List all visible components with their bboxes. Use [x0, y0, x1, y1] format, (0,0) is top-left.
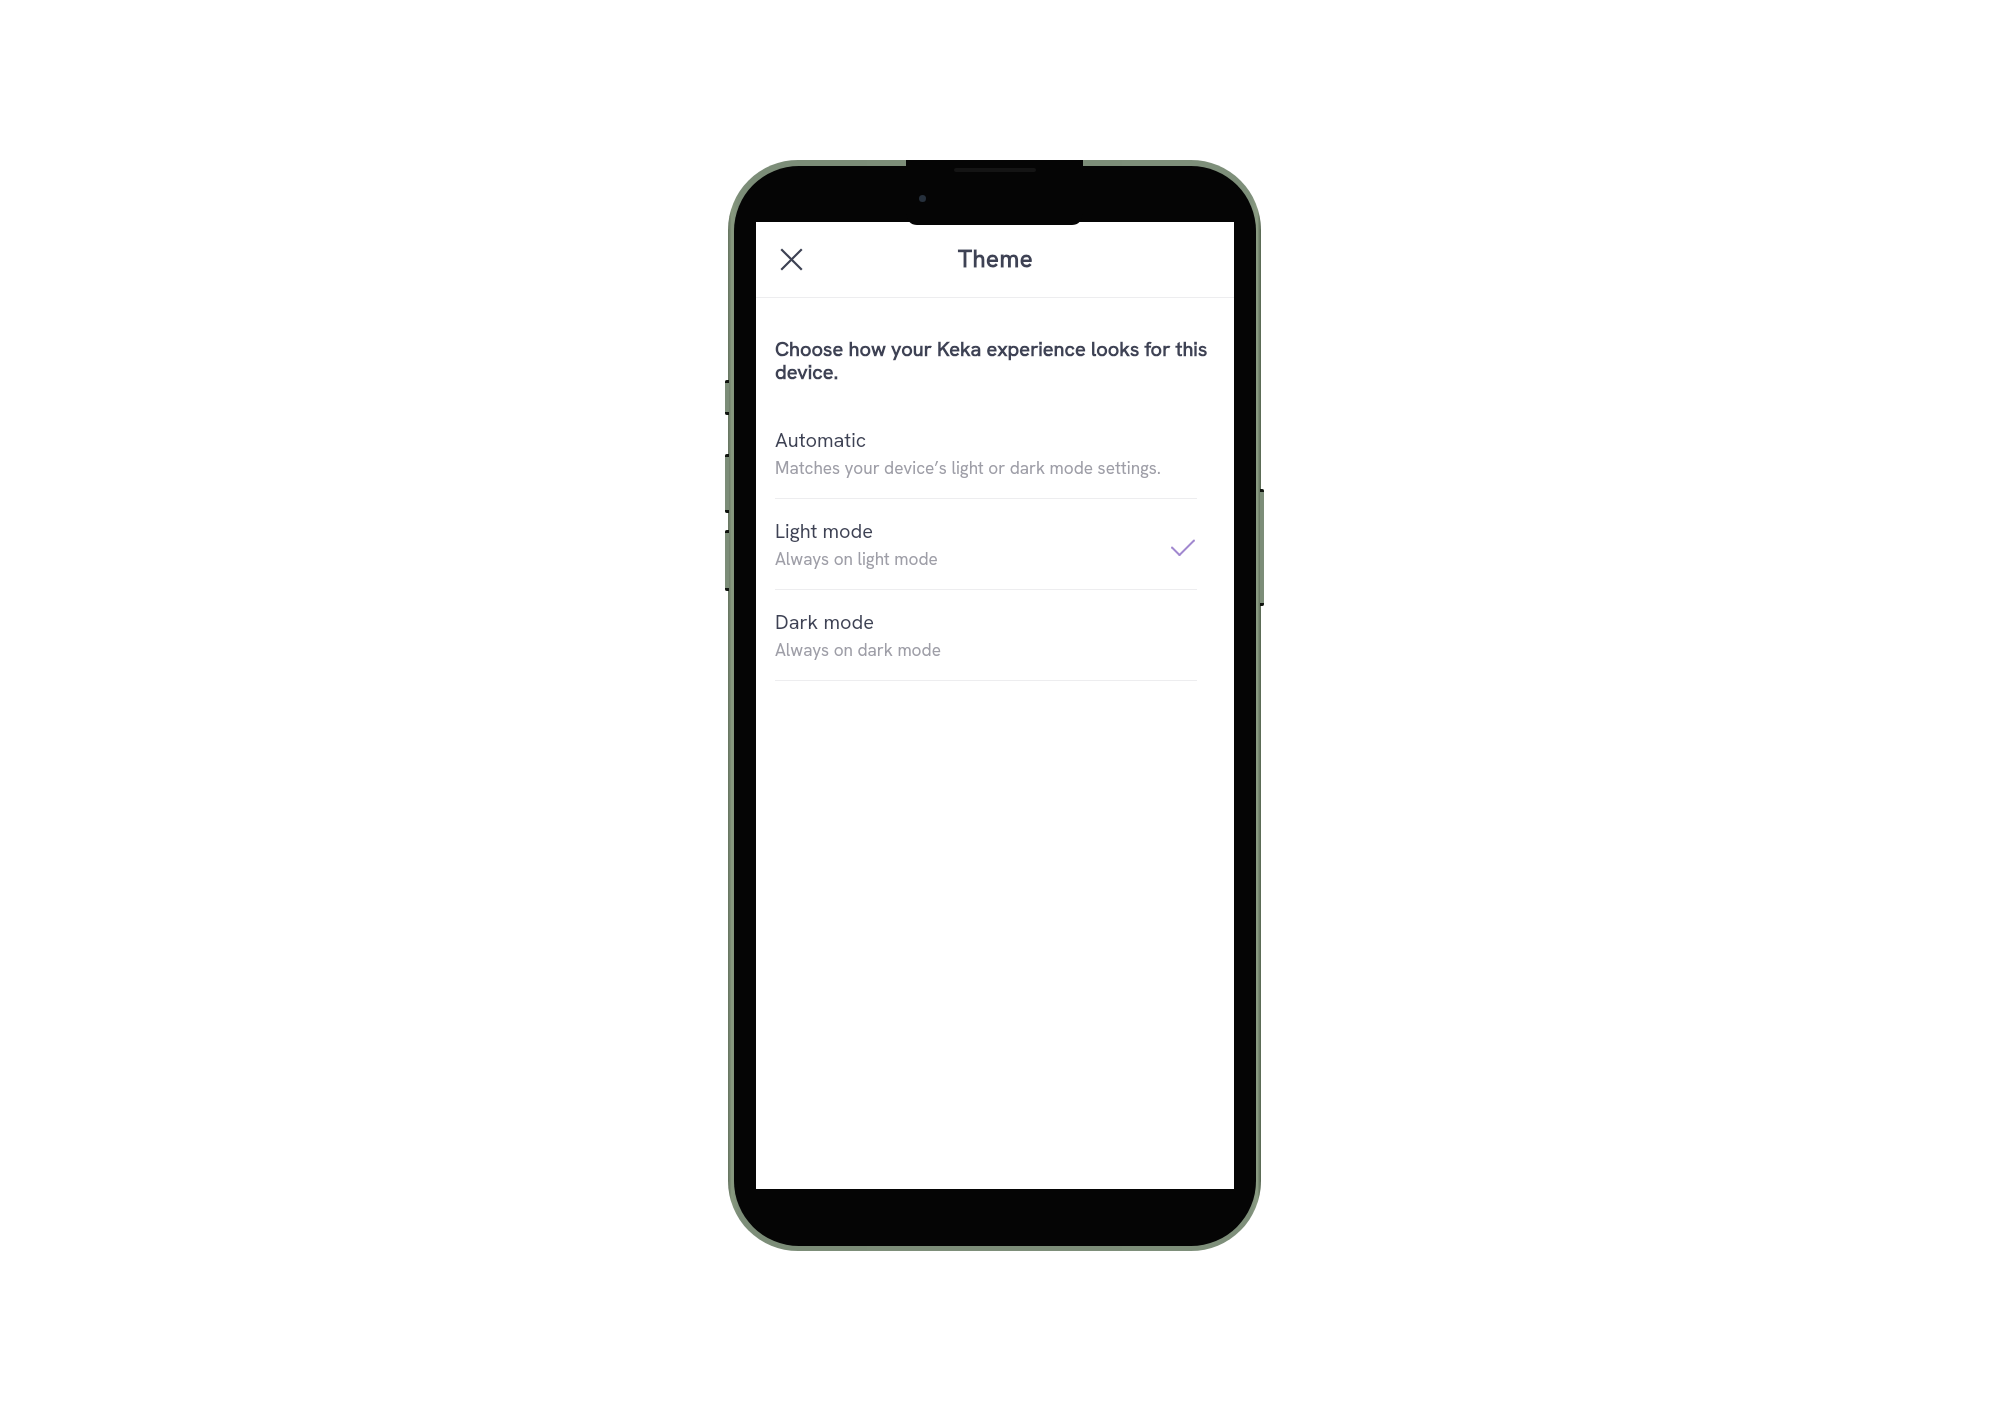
staticText: Always on dark mode: [775, 639, 941, 661]
staticText: Automatic: [775, 427, 867, 453]
staticText: Dark mode: [775, 609, 875, 635]
button[interactable]: Close: [769, 237, 813, 281]
staticText: Matches your device’s light or dark mode…: [775, 457, 1161, 479]
staticText: Light mode: [775, 518, 874, 544]
button[interactable]: Automatic: [756, 427, 1234, 518]
staticText: Choose how your Keka experience looks fo…: [775, 336, 1219, 385]
button[interactable]: Dark mode: [756, 609, 1234, 700]
button[interactable]: Selected: [1171, 540, 1205, 574]
button[interactable]: Light mode: [756, 518, 1234, 609]
staticText: Theme: [958, 243, 1034, 274]
staticText: Always on light mode: [775, 548, 938, 570]
